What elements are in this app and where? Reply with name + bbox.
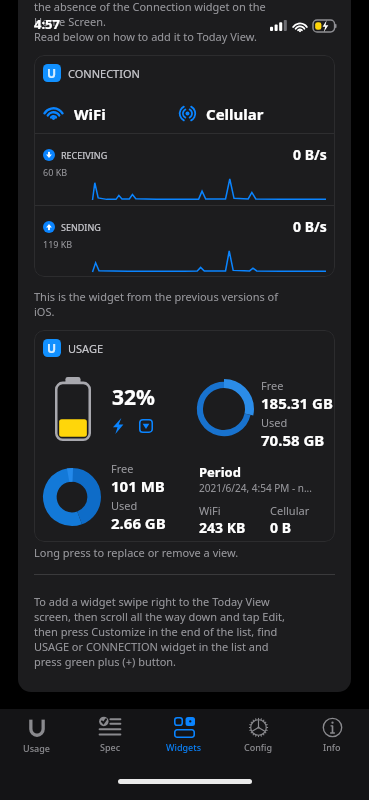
staticText: USAGE: [68, 341, 104, 356]
button[interactable]: Usage: [0, 709, 73, 761]
staticText: 70.58 GB: [261, 430, 325, 450]
staticText: Used: [261, 415, 288, 430]
staticText: 0 B/s: [293, 217, 327, 236]
staticText: WiFi: [199, 503, 221, 518]
staticText: press green plus (+) button.: [34, 654, 177, 669]
staticText: Free: [261, 378, 284, 393]
staticText: Cellular: [206, 104, 264, 124]
staticText: WiFi: [74, 104, 106, 124]
staticText: To add a widget swipe right to the Today…: [34, 594, 270, 609]
staticText: Free: [111, 461, 134, 476]
button[interactable]: Config: [221, 709, 295, 761]
staticText: USAGE or CONNECTION widget in the list a…: [34, 639, 269, 654]
button[interactable]: Spec: [73, 709, 147, 761]
staticText: CONNECTION: [68, 66, 140, 81]
staticText: This is the widget from the previous ver…: [34, 289, 279, 304]
staticText: U: [47, 340, 57, 356]
staticText: Spec: [100, 741, 121, 753]
staticText: Config: [244, 741, 273, 753]
staticText: 185.31 GB: [261, 393, 333, 413]
staticText: 101 MB: [111, 476, 165, 496]
staticText: RECEIVING: [61, 149, 108, 161]
staticText: SENDING: [61, 221, 101, 233]
staticText: Widgets: [166, 741, 202, 753]
staticText: Cellular: [270, 503, 310, 518]
staticText: 0 B/s: [293, 145, 327, 164]
staticText: iOS.: [34, 304, 55, 319]
staticText: 2021/6/24, 4:54 PM - n...: [199, 481, 312, 495]
staticText: 119 KB: [43, 238, 73, 250]
staticText: Usage: [23, 742, 50, 754]
staticText: Home Screen.: [34, 14, 106, 29]
staticText: Period: [199, 463, 241, 481]
staticText: then press Customize in the end of the l…: [34, 624, 278, 639]
staticText: Info: [323, 741, 341, 753]
staticText: 2.66 GB: [111, 513, 166, 533]
staticText: 0 B: [270, 518, 291, 537]
staticText: Long press to replace or remove a view.: [34, 545, 239, 560]
button[interactable]: Widgets: [147, 709, 221, 761]
button[interactable]: Info: [295, 709, 369, 761]
staticText: the absence of the Connection widget on …: [34, 0, 266, 14]
staticText: 32%: [112, 383, 155, 412]
staticText: 243 KB: [199, 518, 246, 537]
staticText: Used: [111, 498, 138, 513]
staticText: 4:57: [34, 15, 60, 33]
staticText: 60 KB: [43, 166, 68, 178]
staticText: U: [47, 65, 57, 81]
staticText: Read below on how to add it to Today Vie…: [34, 29, 257, 44]
staticText: screen, then scroll all the way down and…: [34, 609, 285, 624]
